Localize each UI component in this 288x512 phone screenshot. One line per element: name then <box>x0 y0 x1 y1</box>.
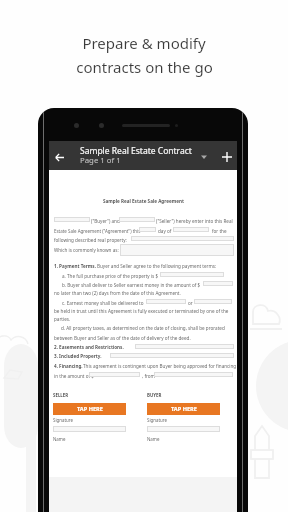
staticText: Estate Sale Agreement ("Agreement") this <box>54 228 141 234</box>
staticText: between Buyer and Seller as of the date … <box>54 335 191 341</box>
staticText: Sample Real Estate Contract <box>80 145 192 156</box>
staticText: b. Buyer shall deliver to Seller earnest… <box>62 282 201 288</box>
staticText: This agreement is contingent upon Buyer … <box>83 363 237 369</box>
staticText: be held in trust until this Agreement is… <box>54 308 229 314</box>
staticText: a. The full purchase price of the proper… <box>62 273 159 279</box>
staticText: or <box>188 300 193 306</box>
staticText: 3. Included Property. <box>54 353 102 359</box>
staticText: Name <box>53 436 66 442</box>
staticText: d. All property taxes, as determined on … <box>61 325 225 331</box>
staticText: following described real property: <box>54 237 127 243</box>
staticText: Sample Real Estate Sale Agreement <box>103 198 184 204</box>
staticText: TAP HERE <box>171 405 197 413</box>
staticText: contracts on the go <box>76 57 213 77</box>
staticText: parties. <box>54 316 71 322</box>
staticText: 2. Easements and Restrictions. <box>54 344 124 350</box>
staticText: Signature <box>147 417 167 423</box>
button[interactable]: Back <box>50 146 69 168</box>
staticText: Which is commonly known as: <box>54 247 119 253</box>
staticText: 1. Payment Terms. <box>54 263 96 269</box>
staticText: Prepare & modify <box>82 33 206 53</box>
staticText: for the <box>212 228 227 234</box>
staticText: Name <box>147 436 160 442</box>
button[interactable]: Add <box>216 146 237 168</box>
staticText: Buyer and Seller agree to the following … <box>97 263 217 269</box>
staticText: 4. Financing. <box>54 363 83 369</box>
staticText: BUYER <box>147 392 162 398</box>
staticText: c. Earnest money shall be delivered to <box>62 300 144 306</box>
staticText: SELLER <box>53 392 69 398</box>
button[interactable]: More options <box>195 146 212 168</box>
staticText: , from <box>142 373 155 379</box>
staticText: day of <box>158 228 172 234</box>
button[interactable]: TAP HERE <box>147 403 220 415</box>
staticText: TAP HERE <box>77 405 103 413</box>
staticText: in the amount of $ <box>54 373 94 379</box>
staticText: ("Buyer") and <box>91 218 120 224</box>
staticText: no later than two (2) days from the date… <box>54 290 181 296</box>
button[interactable]: TAP HERE <box>53 403 126 415</box>
staticText: ("Seller") hereby enter into this Real <box>156 218 233 224</box>
staticText: Page 1 of 1 <box>80 155 121 165</box>
staticText: Signature <box>53 417 73 423</box>
